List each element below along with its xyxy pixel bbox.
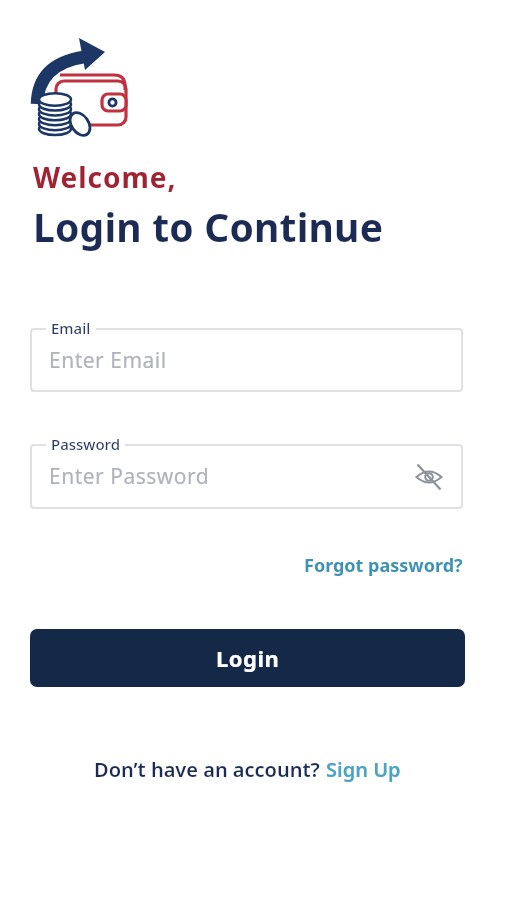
staticText: Enter Email	[49, 346, 167, 375]
staticText: Login to Continue	[33, 200, 384, 253]
button[interactable]: Login	[30, 629, 465, 687]
staticText: Login	[216, 643, 280, 673]
button[interactable]: Forgot password?	[304, 553, 463, 578]
staticText: Don’t have an account?	[94, 756, 326, 783]
button[interactable]	[30, 444, 463, 509]
button[interactable]	[30, 328, 463, 392]
staticText: Enter Password	[49, 462, 210, 491]
button[interactable]: Sign Up	[326, 756, 401, 783]
staticText: Password	[51, 434, 120, 454]
staticText: Welcome,	[33, 158, 177, 196]
staticText: Email	[51, 318, 91, 338]
